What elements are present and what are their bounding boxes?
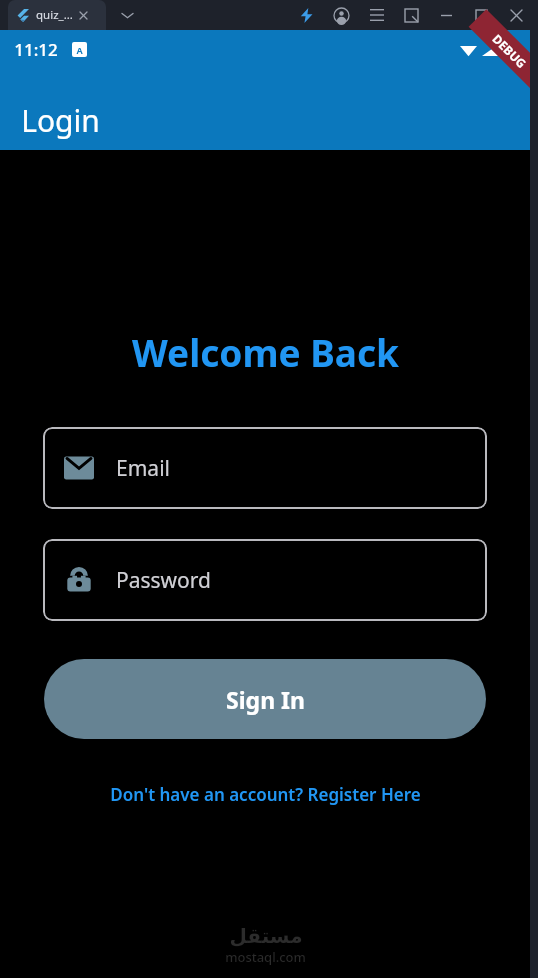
staticText: Welcome Back	[132, 327, 399, 377]
staticText: Login	[21, 100, 100, 141]
staticText: Email	[116, 454, 170, 483]
staticText: quiz_...	[36, 7, 73, 23]
staticText: A	[76, 44, 83, 56]
button[interactable]: Email	[43, 427, 487, 509]
staticText: DEBUG	[489, 30, 530, 71]
button[interactable]: Minimize	[429, 0, 464, 30]
button[interactable]: Restore down	[394, 0, 429, 30]
button[interactable]: Run	[289, 0, 324, 30]
button[interactable]: Don't have an account? Register Here	[0, 775, 530, 814]
button[interactable]: Close tab	[76, 8, 90, 22]
button[interactable]: Password	[43, 539, 487, 621]
staticText: Password	[116, 566, 211, 595]
staticText: Don't have an account? Register Here	[110, 783, 421, 806]
button[interactable]: Tab list	[112, 0, 142, 30]
staticText: mostaql.com	[225, 948, 306, 966]
button[interactable]: quiz_...	[8, 0, 106, 30]
button[interactable]: Menu	[359, 0, 394, 30]
button[interactable]: Sign In	[44, 659, 486, 739]
button[interactable]: Close	[499, 0, 534, 30]
staticText: مستقل	[229, 924, 303, 947]
staticText: Sign In	[226, 684, 305, 715]
button[interactable]: Account	[324, 0, 359, 30]
staticText: 11:12	[14, 38, 58, 61]
button[interactable]: Maximize	[464, 0, 499, 30]
